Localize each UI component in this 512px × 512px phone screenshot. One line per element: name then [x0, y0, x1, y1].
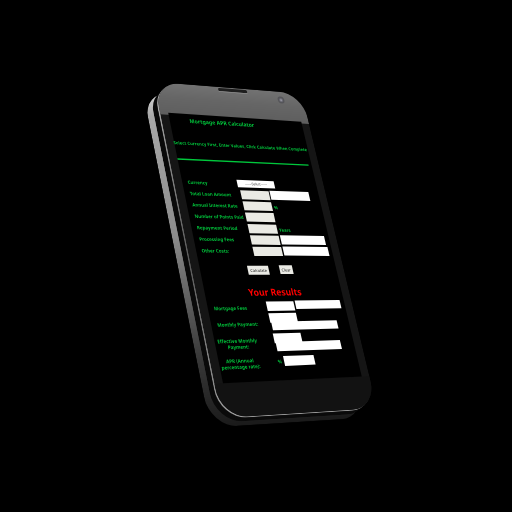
- staticText: Mortgage APR Calculator: [189, 117, 255, 128]
- button[interactable]: [282, 246, 330, 256]
- staticText: Processing Fees: [198, 236, 253, 243]
- staticText: Calculate: [250, 267, 268, 273]
- button[interactable]: [268, 313, 298, 323]
- button[interactable]: [250, 235, 281, 245]
- button[interactable]: [273, 333, 302, 343]
- button[interactable]: [266, 301, 295, 311]
- button[interactable]: [280, 235, 326, 245]
- button[interactable]: [283, 355, 316, 366]
- staticText: Effective Monthly Payment:: [214, 337, 261, 351]
- staticText: Annual Interest Rate: [191, 201, 246, 209]
- staticText: Number of Points Paid: [194, 213, 248, 220]
- button[interactable]: Calculate: [247, 266, 270, 275]
- staticText: ------Select------: [245, 181, 268, 187]
- button[interactable]: [242, 201, 273, 211]
- staticText: Repayment Period: [196, 224, 251, 231]
- staticText: %: [277, 358, 284, 364]
- button[interactable]: ------Select------: [236, 180, 275, 188]
- staticText: Other Costs:: [201, 247, 256, 254]
- staticText: Select Currency First, Enter Values, Cli…: [173, 140, 308, 153]
- staticText: Years: [278, 227, 295, 233]
- staticText: Total Loan Amount: [189, 190, 244, 198]
- staticText: Clear: [281, 267, 291, 273]
- button[interactable]: [271, 320, 338, 330]
- staticText: Currency: [187, 179, 241, 187]
- button[interactable]: [245, 212, 275, 222]
- button[interactable]: Clear: [279, 265, 294, 274]
- button[interactable]: [269, 191, 310, 201]
- button[interactable]: [247, 224, 278, 234]
- button[interactable]: [240, 190, 271, 200]
- staticText: Mortgage Fees: [213, 304, 269, 311]
- staticText: APR (Annual percentage rate):: [218, 356, 263, 371]
- staticText: Monthly Payment:: [216, 320, 272, 328]
- button[interactable]: [295, 300, 341, 309]
- staticText: %: [273, 204, 281, 210]
- button[interactable]: [252, 247, 283, 256]
- button[interactable]: [276, 340, 342, 351]
- staticText: Your Results: [203, 285, 343, 300]
